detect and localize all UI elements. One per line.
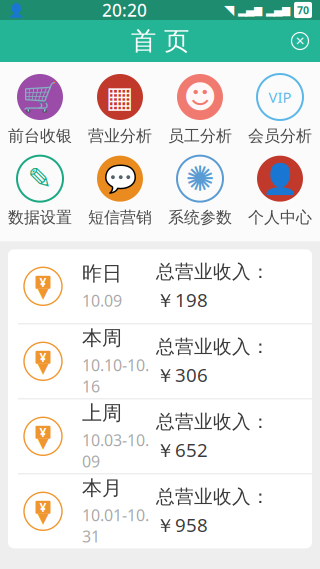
staticText: 系统参数	[168, 208, 232, 227]
staticText: VIP	[268, 87, 291, 107]
staticText: ✎	[27, 162, 52, 195]
staticText: 总营业收入：	[156, 260, 270, 283]
staticText: ☻	[183, 79, 216, 115]
button[interactable]: 🛒	[0, 74, 80, 146]
staticText: ▼	[37, 284, 48, 301]
button[interactable]: Close	[280, 20, 320, 62]
staticText: 🛒	[21, 80, 58, 114]
staticText: 首 页	[131, 25, 189, 56]
staticText: ▼	[37, 359, 48, 376]
staticText: ￥958	[156, 512, 208, 537]
staticText: 10.03-10.09	[82, 429, 149, 472]
button[interactable]: ▦	[80, 74, 160, 146]
staticText: ¥	[39, 349, 46, 365]
staticText: 👤	[261, 162, 298, 195]
staticText: 营业分析	[88, 126, 152, 146]
staticText: 个人中心	[248, 208, 312, 227]
staticText: ¥	[39, 424, 46, 440]
button[interactable]: 👤	[240, 156, 320, 227]
staticText: 前台收银	[8, 126, 72, 146]
staticText: ✺	[185, 159, 214, 198]
staticText: 短信营销	[88, 208, 152, 227]
staticText: 10.01-10.31	[82, 504, 149, 547]
staticText: ▼	[37, 509, 48, 526]
staticText: ◥	[224, 2, 234, 17]
staticText: 10.09	[82, 290, 122, 311]
staticText: ▦	[106, 80, 134, 114]
button[interactable]: ¥	[8, 399, 312, 473]
staticText: 会员分析	[248, 126, 312, 146]
button[interactable]: ✎	[0, 156, 80, 227]
button[interactable]: ¥	[8, 324, 312, 398]
staticText: ￥198	[156, 287, 208, 312]
staticText: ￥652	[156, 437, 208, 462]
staticText: 上周	[82, 401, 122, 425]
button[interactable]: ¥	[8, 249, 312, 323]
staticText: 员工分析	[168, 126, 232, 146]
button[interactable]: ✺	[160, 156, 240, 227]
staticText: 👤	[8, 2, 25, 18]
staticText: 20:20	[102, 0, 147, 21]
staticText: ¥	[39, 499, 46, 515]
staticText: 总营业收入：	[156, 485, 270, 508]
button[interactable]: ¥	[8, 474, 312, 548]
button[interactable]: 💬	[80, 156, 160, 227]
staticText: ▂▄▆	[266, 4, 290, 16]
staticText: ✕	[295, 34, 305, 48]
staticText: 70	[297, 3, 309, 17]
staticText: 昨日	[82, 261, 122, 286]
staticText: 本月	[82, 476, 122, 500]
staticText: 总营业收入：	[156, 410, 270, 433]
staticText: 💬	[103, 163, 136, 194]
staticText: ¥	[39, 274, 46, 290]
staticText: 数据设置	[8, 208, 72, 227]
staticText: 10.10-10.16	[82, 354, 149, 397]
staticText: ▼	[37, 434, 48, 451]
staticText: 本周	[82, 326, 122, 350]
staticText: ￥306	[156, 362, 208, 387]
button[interactable]: VIP	[240, 74, 320, 146]
staticText: ▂▄▆	[238, 4, 262, 16]
staticText: 总营业收入：	[156, 335, 270, 358]
button[interactable]: ☻	[160, 74, 240, 146]
